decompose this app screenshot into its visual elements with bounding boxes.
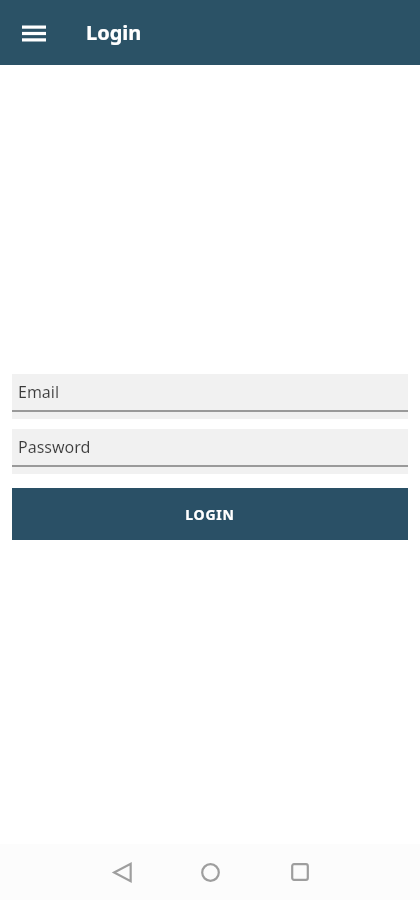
button[interactable]: Email — [12, 374, 408, 419]
button[interactable]: Recent apps — [276, 848, 324, 896]
button[interactable]: Open navigation menu — [10, 9, 58, 57]
button[interactable]: Password — [12, 429, 408, 474]
staticText: LOGIN — [185, 505, 235, 524]
staticText: Email — [18, 381, 60, 403]
button[interactable]: Back — [98, 848, 146, 896]
button[interactable]: LOGIN — [12, 488, 408, 540]
button[interactable]: Home — [186, 848, 234, 896]
staticText: Password — [18, 436, 91, 458]
staticText: Login — [86, 19, 142, 46]
